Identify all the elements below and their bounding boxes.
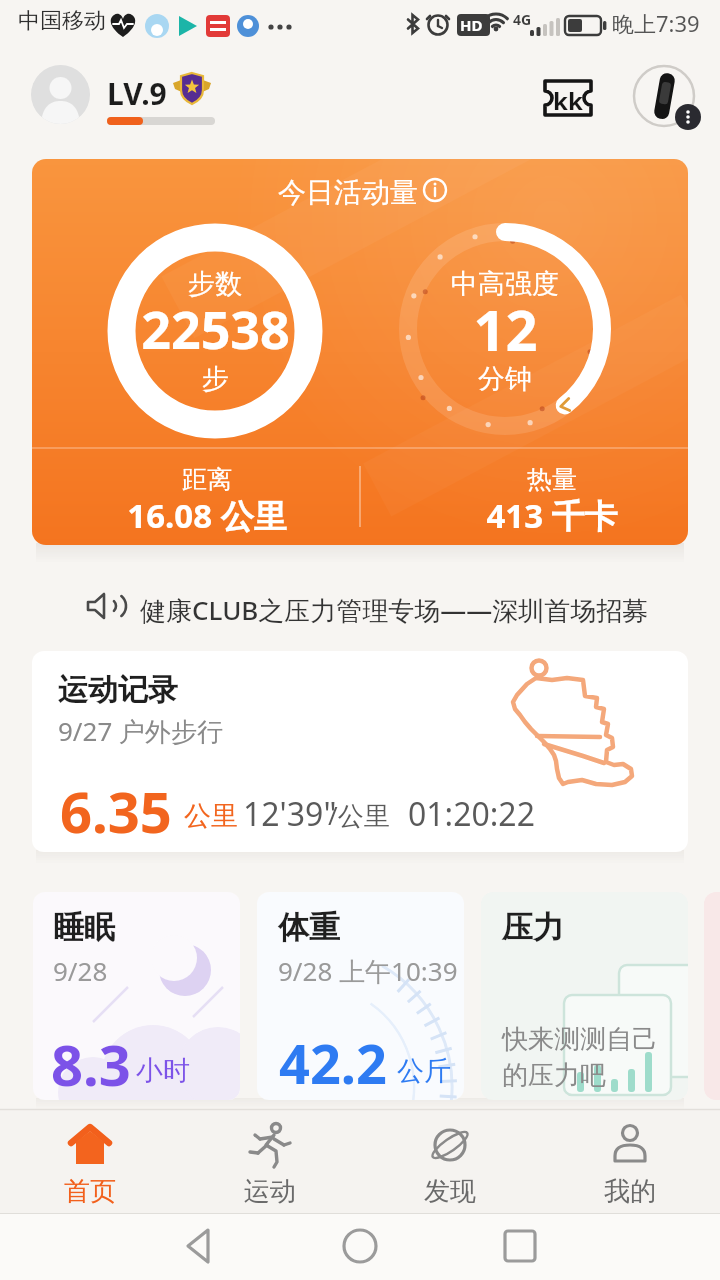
button[interactable]: kk (543, 79, 593, 117)
button[interactable]: 健康CLUB之压力管理专场——深圳首场招募 (60, 580, 660, 632)
staticText: /公里 (328, 797, 390, 833)
staticText: 8.3 (51, 1026, 131, 1100)
button[interactable] (335, 1223, 385, 1271)
staticText: 9/28 (53, 953, 108, 988)
staticText: 22538 (141, 293, 290, 364)
staticText: 中高强度 (451, 267, 559, 301)
staticText: 413 千卡 (486, 493, 618, 538)
button[interactable]: 压力 (481, 892, 688, 1100)
staticText: 分钟 (478, 362, 532, 396)
button[interactable]: 运动记录 (32, 651, 688, 852)
button[interactable]: 运动 (200, 1113, 340, 1209)
staticText: 健康CLUB之压力管理专场——深圳首场招募 (140, 592, 649, 628)
staticText: 42.2 (279, 1026, 387, 1100)
staticText: 6.35 (60, 773, 172, 849)
button[interactable] (495, 1223, 545, 1271)
staticText: 首页 (64, 1175, 116, 1208)
button[interactable]: 今日活动量 (32, 159, 688, 545)
staticText: 9/27 户外步行 (58, 713, 224, 749)
button[interactable]: 体重 (257, 892, 464, 1100)
staticText: 体重 (278, 908, 340, 947)
button[interactable] (632, 64, 696, 128)
button[interactable] (31, 65, 90, 124)
staticText: 01:20:22 (408, 792, 535, 836)
staticText: 12 (473, 291, 538, 367)
staticText: 运动 (244, 1175, 296, 1208)
staticText: 12'39" (243, 792, 337, 836)
staticText: 快来测测自己 (502, 1023, 658, 1056)
staticText: 4G (513, 10, 532, 29)
staticText: 16.08 公里 (127, 493, 287, 538)
staticText: 运动记录 (58, 671, 178, 709)
button[interactable]: 发现 (380, 1113, 520, 1209)
button[interactable]: 首页 (20, 1113, 160, 1209)
staticText: LV.9 (107, 73, 167, 114)
staticText: 小时 (136, 1054, 190, 1088)
staticText: 压力 (502, 908, 564, 947)
staticText: 公里 (184, 799, 238, 833)
staticText: 热量 (527, 464, 577, 495)
button[interactable]: 我的 (560, 1113, 700, 1209)
staticText: 步数 (188, 267, 242, 301)
staticText: HD (460, 15, 483, 35)
staticText: 公斤 (397, 1054, 451, 1088)
staticText: kk (553, 84, 583, 117)
staticText: 晚上7:39 (612, 8, 700, 38)
staticText: 发现 (424, 1175, 476, 1208)
button[interactable] (175, 1223, 225, 1271)
button[interactable]: 睡眠 (33, 892, 240, 1100)
staticText: 的压力吧 (502, 1059, 606, 1092)
staticText: 睡眠 (53, 908, 115, 947)
staticText: 步 (202, 362, 229, 396)
staticText: 中国移动 (18, 7, 106, 35)
staticText: 今日活动量 (278, 175, 418, 210)
staticText: 距离 (182, 464, 232, 495)
staticText: 9/28 上午10:39 (278, 953, 458, 989)
staticText: 我的 (604, 1175, 656, 1208)
